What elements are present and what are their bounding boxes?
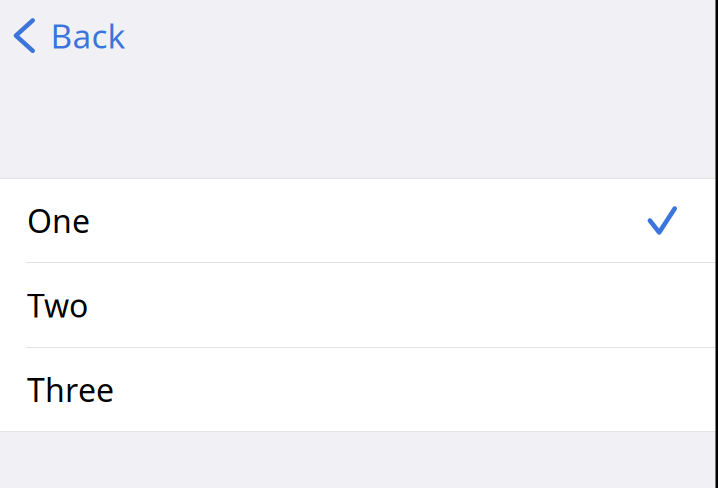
- button[interactable]: Three: [0, 348, 718, 431]
- button[interactable]: Two: [0, 263, 718, 347]
- staticText: One: [27, 199, 90, 242]
- button[interactable]: Back: [0, 4, 141, 67]
- staticText: Two: [27, 284, 88, 326]
- button[interactable]: One: [0, 179, 718, 262]
- staticText: Three: [27, 368, 114, 411]
- staticText: Back: [50, 13, 125, 58]
